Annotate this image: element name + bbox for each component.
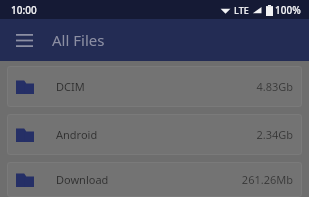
button[interactable]: Open navigation drawer bbox=[6, 22, 42, 58]
staticText: Download bbox=[56, 172, 109, 187]
button[interactable]: Android bbox=[7, 114, 302, 155]
staticText: 100% bbox=[275, 3, 301, 17]
staticText: 261.26Mb bbox=[241, 172, 293, 187]
staticText: DCIM bbox=[56, 79, 85, 94]
staticText: Android bbox=[56, 127, 98, 142]
staticText: 10:00 bbox=[11, 3, 37, 17]
button[interactable]: DCIM bbox=[7, 66, 302, 107]
button[interactable]: Download bbox=[7, 162, 302, 197]
staticText: 4.83Gb bbox=[256, 79, 293, 94]
staticText: 2.34Gb bbox=[256, 127, 293, 142]
staticText: LTE bbox=[234, 4, 249, 16]
staticText: All Files bbox=[52, 30, 105, 50]
